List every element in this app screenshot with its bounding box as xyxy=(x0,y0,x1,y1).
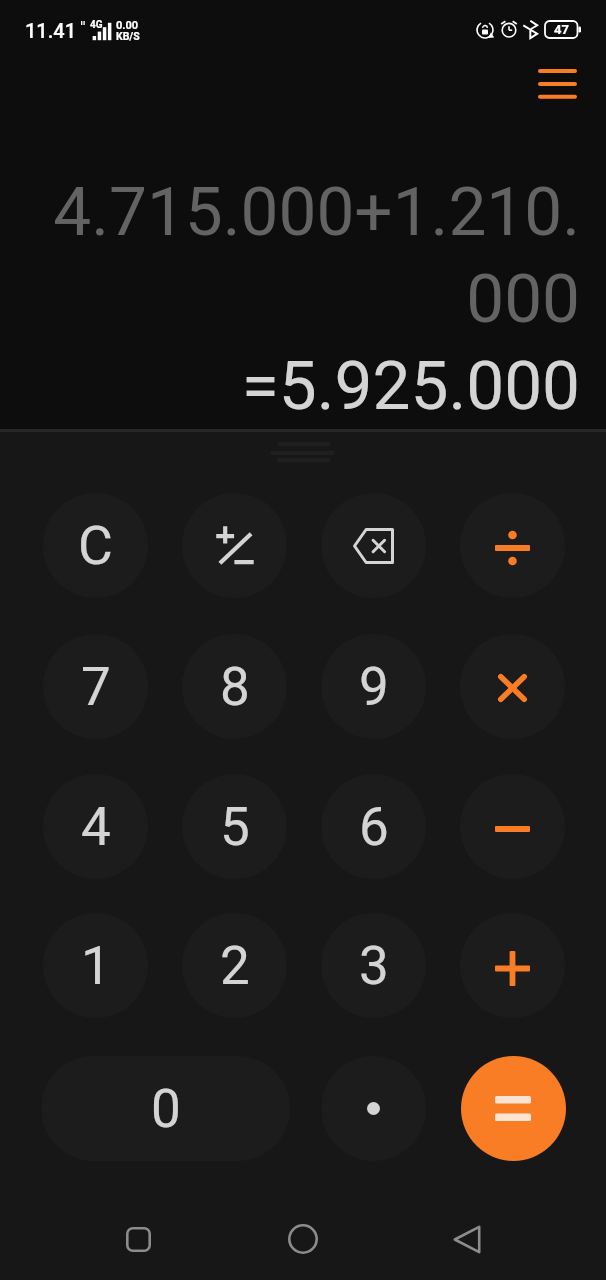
button[interactable]: C xyxy=(43,493,148,598)
staticText: 3 xyxy=(359,935,389,997)
button[interactable]: 6 xyxy=(321,774,426,879)
button[interactable]: Toggle sign xyxy=(182,493,287,598)
button[interactable]: 1 xyxy=(43,913,148,1018)
button[interactable]: Backspace xyxy=(321,493,426,598)
staticText: 4 xyxy=(81,796,111,858)
button[interactable]: Equals xyxy=(461,1056,566,1161)
staticText: 11.41 xyxy=(25,19,77,42)
staticText: 0 xyxy=(151,1078,181,1140)
button[interactable]: Minus xyxy=(460,774,565,879)
button[interactable]: 4 xyxy=(43,774,148,879)
button[interactable]: Plus xyxy=(460,913,565,1018)
staticText: 5 xyxy=(220,796,250,858)
staticText: 4G xyxy=(90,19,103,31)
button[interactable]: 5 xyxy=(182,774,287,879)
staticText: 47 xyxy=(554,22,569,37)
staticText: 000 xyxy=(26,259,580,338)
button[interactable]: 9 xyxy=(321,634,426,739)
staticText: 2 xyxy=(220,935,250,997)
button[interactable]: 3 xyxy=(321,913,426,1018)
button[interactable]: Decimal point xyxy=(321,1056,426,1161)
staticText: 6 xyxy=(359,796,389,858)
staticText: 7 xyxy=(81,656,111,718)
staticText: KB/S xyxy=(116,30,140,42)
staticText: 0.00 xyxy=(116,19,139,32)
staticText: C xyxy=(78,514,113,577)
button[interactable]: 7 xyxy=(43,634,148,739)
button[interactable]: Recents xyxy=(102,1203,174,1275)
staticText: 8 xyxy=(220,656,250,718)
button[interactable]: Back xyxy=(431,1203,503,1275)
button[interactable]: Divide xyxy=(460,493,565,598)
button[interactable]: 2 xyxy=(182,913,287,1018)
button[interactable]: Home xyxy=(267,1203,339,1275)
staticText: =5.925.000 xyxy=(26,346,580,425)
button[interactable]: 0 xyxy=(41,1056,290,1161)
button[interactable]: Menu xyxy=(529,56,585,112)
staticText: 1 xyxy=(81,935,111,997)
staticText: 4.715.000+1.210. xyxy=(26,172,580,251)
button[interactable]: 8 xyxy=(182,634,287,739)
staticText: 9 xyxy=(359,656,389,718)
button[interactable]: Multiply xyxy=(460,634,565,739)
